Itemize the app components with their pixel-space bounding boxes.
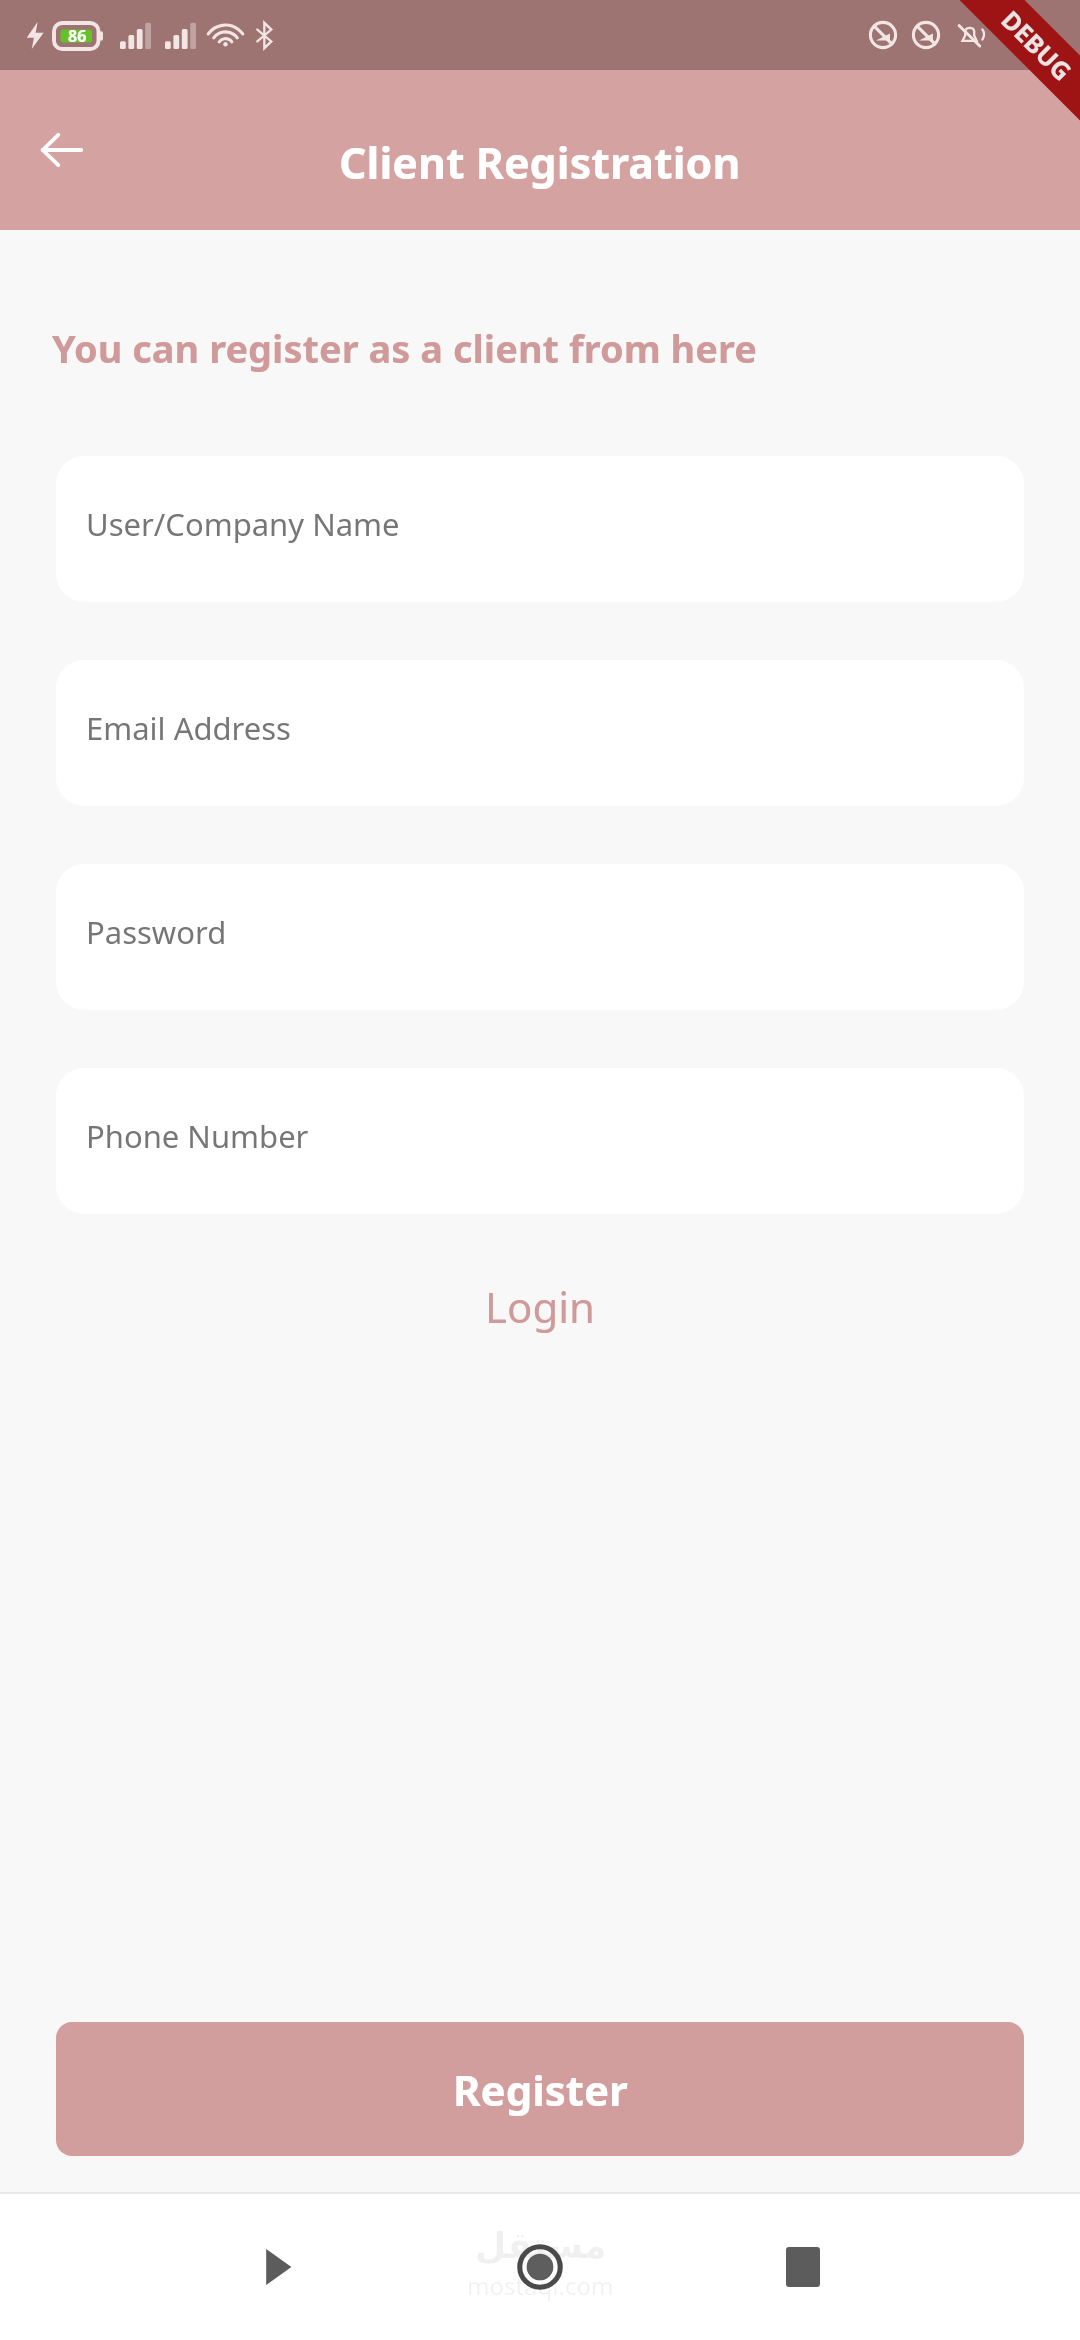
staticText: You can register as a client from here [52, 322, 757, 374]
staticText: Client Registration [339, 133, 741, 192]
staticText: Password [86, 911, 227, 953]
staticText: Phone Number [86, 1115, 309, 1157]
staticText: Register [453, 2061, 628, 2118]
staticText: Email Address [86, 707, 291, 749]
button[interactable]: Recents [757, 2221, 849, 2313]
staticText: User/Company Name [86, 503, 400, 545]
staticText: mostaql.com [467, 2269, 614, 2302]
button[interactable]: Back [24, 112, 100, 188]
staticText: مستقل [475, 2225, 607, 2267]
button[interactable]: User/Company Name [56, 456, 1024, 602]
button[interactable]: Register [56, 2022, 1024, 2156]
button[interactable]: Back [231, 2221, 323, 2313]
button[interactable]: Email Address [56, 660, 1024, 806]
button[interactable]: Home [494, 2221, 586, 2313]
staticText: Login [485, 1278, 596, 1335]
button[interactable]: Phone Number [56, 1068, 1024, 1214]
button[interactable]: Password [56, 864, 1024, 1010]
staticText: DEBUG [995, 3, 1079, 87]
staticText: 86 [68, 25, 87, 47]
staticText: م ١٠:٢٤ [999, 22, 1062, 48]
button[interactable]: Login [0, 1256, 1080, 1356]
